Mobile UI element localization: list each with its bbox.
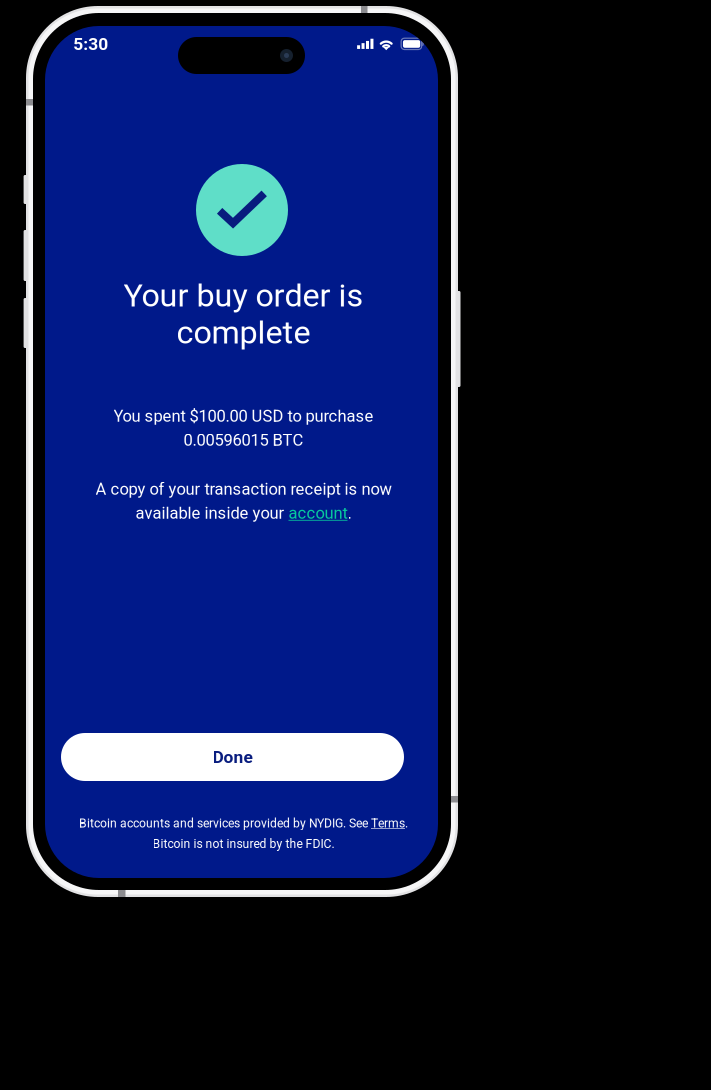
- staticText: .: [347, 503, 351, 523]
- button[interactable]: Done: [61, 733, 404, 781]
- button[interactable]: Terms: [371, 816, 405, 830]
- staticText: 5:30: [73, 34, 108, 54]
- staticText: .: [405, 816, 408, 830]
- button[interactable]: account: [288, 503, 347, 523]
- staticText: You spent $100.00 USD to purchase: [113, 406, 373, 426]
- staticText: account: [288, 503, 347, 523]
- staticText: Done: [212, 747, 252, 767]
- staticText: Terms: [371, 816, 405, 830]
- staticText: complete: [176, 314, 310, 351]
- staticText: available inside your: [135, 503, 288, 523]
- staticText: Your buy order is: [123, 277, 363, 314]
- staticText: 0.00596015 BTC: [183, 430, 303, 450]
- staticText: Bitcoin is not insured by the FDIC.: [152, 837, 334, 851]
- staticText: Bitcoin accounts and services provided b…: [79, 816, 371, 830]
- staticText: A copy of your transaction receipt is no…: [95, 479, 391, 499]
